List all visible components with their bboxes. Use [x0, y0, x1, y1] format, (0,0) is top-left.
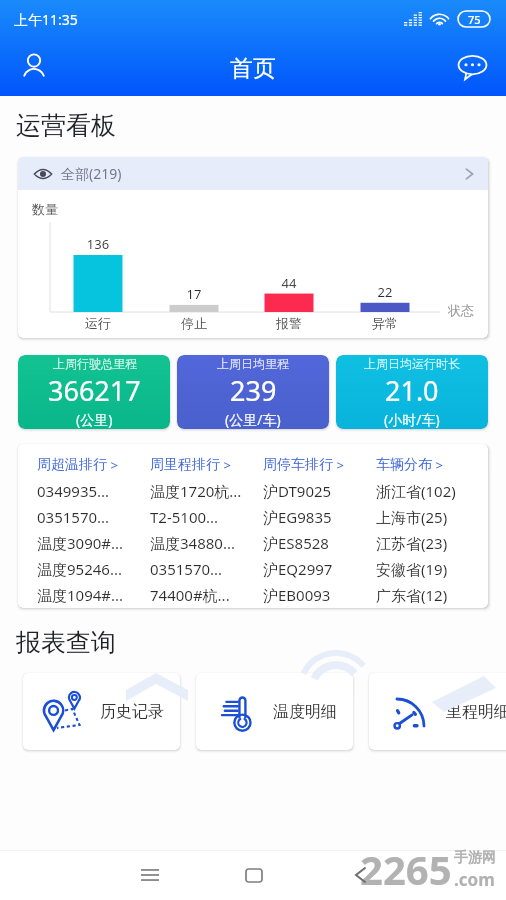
- staticText: 安徽省(19): [376, 559, 448, 579]
- button[interactable]: 里程明细: [369, 673, 506, 750]
- staticText: 上海市(25): [376, 507, 448, 527]
- button[interactable]: 上周日均运行时长: [336, 355, 488, 429]
- staticText: 0351570...: [37, 507, 110, 527]
- staticText: 上午11:35: [14, 10, 78, 29]
- staticText: 上周日均运行时长: [364, 356, 460, 371]
- staticText: 数量: [32, 201, 58, 217]
- staticText: 44: [259, 274, 319, 292]
- staticText: 全部(219): [61, 164, 122, 183]
- staticText: 21.0: [385, 372, 439, 409]
- button[interactable]: 周停车排行: [263, 456, 344, 474]
- staticText: 周里程排行: [150, 456, 220, 474]
- staticText: 239: [230, 372, 277, 409]
- button[interactable]: 车辆分布: [376, 456, 443, 474]
- staticText: 上周日均里程: [217, 356, 289, 371]
- staticText: 75: [468, 12, 481, 27]
- staticText: 报表查询: [16, 627, 116, 658]
- staticText: 手游网: [454, 849, 496, 867]
- staticText: 上周行驶总里程: [53, 356, 137, 371]
- staticText: 22: [355, 283, 415, 301]
- staticText: 周超温排行: [37, 456, 107, 474]
- staticText: 0349935...: [37, 481, 110, 501]
- button[interactable]: 上周行驶总里程: [18, 355, 170, 429]
- staticText: 首页: [230, 54, 276, 83]
- staticText: 沪EB0093: [263, 585, 331, 605]
- button[interactable]: Messages: [448, 43, 496, 91]
- staticText: >: [220, 456, 231, 474]
- button[interactable]: Home: [230, 858, 278, 892]
- button[interactable]: 周超温排行: [37, 456, 118, 474]
- button[interactable]: Back: [336, 858, 384, 892]
- staticText: 报警: [259, 315, 319, 331]
- staticText: (小时/车): [384, 410, 440, 429]
- staticText: 2265: [360, 842, 452, 892]
- staticText: 异常: [355, 315, 415, 331]
- button[interactable]: 历史记录: [23, 673, 180, 750]
- staticText: (公里/车): [225, 410, 281, 429]
- staticText: 74400#杭...: [150, 585, 230, 605]
- staticText: 车辆分布: [376, 456, 432, 474]
- staticText: 运营看板: [16, 110, 116, 141]
- staticText: 366217: [48, 372, 141, 409]
- staticText: 里程明细: [446, 702, 506, 722]
- staticText: .com: [454, 868, 495, 891]
- staticText: >: [333, 456, 344, 474]
- staticText: 温度3090#...: [37, 533, 124, 553]
- button[interactable]: 温度明细: [196, 673, 353, 750]
- staticText: 温度1094#...: [37, 585, 124, 605]
- staticText: 温度明细: [273, 702, 337, 722]
- staticText: (公里): [76, 410, 113, 429]
- staticText: 温度34880...: [150, 533, 235, 553]
- staticText: 温度1720杭...: [150, 481, 242, 501]
- staticText: 136: [68, 235, 128, 253]
- staticText: 沪EG9835: [263, 507, 332, 527]
- staticText: 周停车排行: [263, 456, 333, 474]
- staticText: T2-5100...: [150, 507, 219, 527]
- staticText: 运行: [68, 315, 128, 331]
- staticText: 17: [164, 285, 224, 303]
- staticText: 江苏省(23): [376, 533, 448, 553]
- button[interactable]: Recents: [126, 858, 174, 892]
- staticText: 温度95246...: [37, 559, 122, 579]
- staticText: 沪ES8528: [263, 533, 329, 553]
- button[interactable]: Profile: [10, 43, 58, 91]
- staticText: 沪DT9025: [263, 481, 332, 501]
- staticText: >: [107, 456, 118, 474]
- staticText: >: [432, 456, 443, 474]
- staticText: 停止: [164, 315, 224, 331]
- button[interactable]: 上周日均里程: [177, 355, 329, 429]
- staticText: 沪EQ2997: [263, 559, 333, 579]
- staticText: 广东省(12): [376, 585, 448, 605]
- button[interactable]: 周里程排行: [150, 456, 231, 474]
- staticText: 历史记录: [100, 702, 164, 722]
- staticText: 0351570...: [150, 559, 223, 579]
- staticText: 浙江省(102): [376, 481, 456, 501]
- staticText: 状态: [448, 302, 474, 318]
- button[interactable]: 全部(219): [18, 157, 488, 190]
